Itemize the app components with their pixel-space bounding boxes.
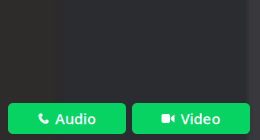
button[interactable]: Video: [132, 103, 250, 134]
staticText: Audio: [55, 109, 96, 128]
button[interactable]: Audio: [8, 103, 126, 134]
staticText: Video: [180, 109, 220, 128]
